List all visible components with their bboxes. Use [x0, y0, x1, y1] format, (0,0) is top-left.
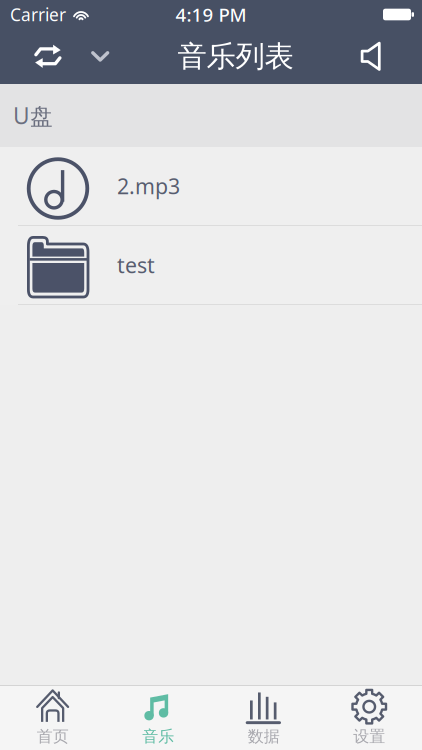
button[interactable]: Volume — [347, 32, 422, 80]
staticText: 4:19 PM — [175, 2, 246, 27]
staticText: 首页 — [37, 727, 69, 746]
staticText: 音乐列表 — [177, 38, 293, 74]
staticText: 音乐 — [142, 727, 174, 746]
button[interactable]: 数据 — [211, 684, 316, 750]
button[interactable]: 首页 — [0, 684, 105, 750]
staticText: Carrier — [10, 3, 66, 26]
button[interactable]: 音乐 — [105, 684, 211, 750]
button[interactable]: 设置 — [316, 684, 422, 750]
button[interactable]: 2.mp3 — [0, 147, 422, 226]
staticText: test — [117, 251, 155, 279]
staticText: 设置 — [353, 727, 385, 746]
button[interactable]: test — [0, 226, 422, 305]
button[interactable]: Sort order — [72, 32, 124, 80]
staticText: U盘 — [13, 100, 53, 131]
staticText: 2.mp3 — [117, 172, 180, 200]
staticText: 数据 — [248, 727, 280, 746]
button[interactable]: Repeat — [0, 32, 72, 80]
